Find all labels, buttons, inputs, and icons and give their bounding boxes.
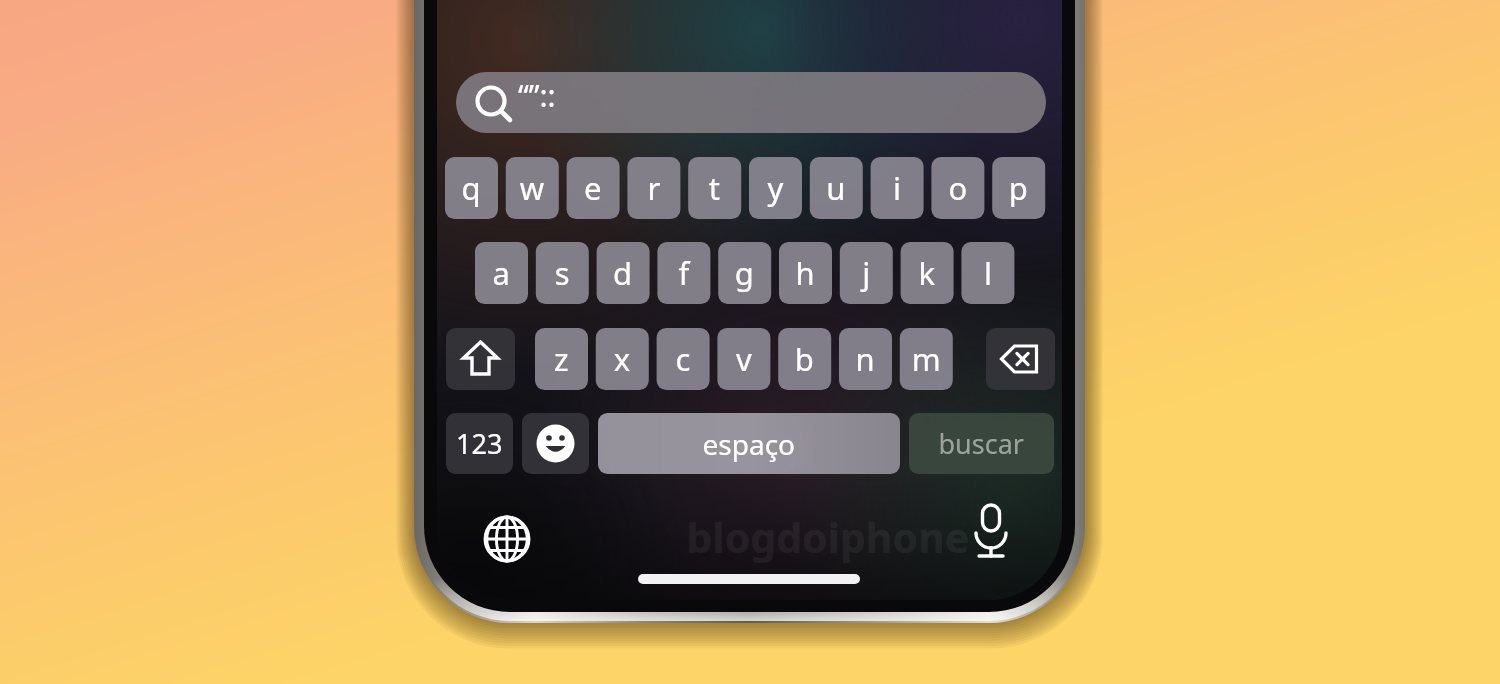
button[interactable]: e: [566, 157, 619, 219]
button[interactable]: m: [899, 328, 952, 390]
button[interactable]: r: [627, 157, 680, 219]
button[interactable]: x: [595, 328, 648, 390]
button[interactable]: Search field: [456, 72, 1046, 133]
button[interactable]: c: [656, 328, 709, 390]
button[interactable]: Dictation: [962, 498, 1020, 562]
button[interactable]: z: [535, 328, 588, 390]
button[interactable]: buscar: [909, 413, 1054, 474]
button[interactable]: y: [749, 157, 802, 219]
button[interactable]: o: [931, 157, 984, 219]
button[interactable]: p: [992, 157, 1045, 219]
button[interactable]: Numbers and symbols: [446, 413, 513, 474]
button[interactable]: f: [657, 242, 710, 304]
button[interactable]: s: [535, 242, 588, 304]
button[interactable]: j: [839, 242, 892, 304]
button[interactable]: l: [961, 242, 1014, 304]
button[interactable]: i: [870, 157, 923, 219]
button[interactable]: n: [839, 328, 892, 390]
button[interactable]: q: [445, 157, 498, 219]
button[interactable]: w: [505, 157, 558, 219]
button[interactable]: k: [900, 242, 953, 304]
button[interactable]: b: [778, 328, 831, 390]
button[interactable]: Backspace: [986, 328, 1055, 390]
button[interactable]: d: [596, 242, 649, 304]
button[interactable]: Emoji keyboard: [522, 413, 589, 474]
button[interactable]: espaço: [598, 413, 900, 474]
button[interactable]: g: [718, 242, 771, 304]
button[interactable]: Shift: [446, 328, 515, 390]
button[interactable]: a: [475, 242, 528, 304]
button[interactable]: u: [809, 157, 862, 219]
button[interactable]: h: [779, 242, 832, 304]
button[interactable]: t: [688, 157, 741, 219]
button[interactable]: v: [717, 328, 770, 390]
button[interactable]: Change keyboard language: [478, 510, 536, 568]
